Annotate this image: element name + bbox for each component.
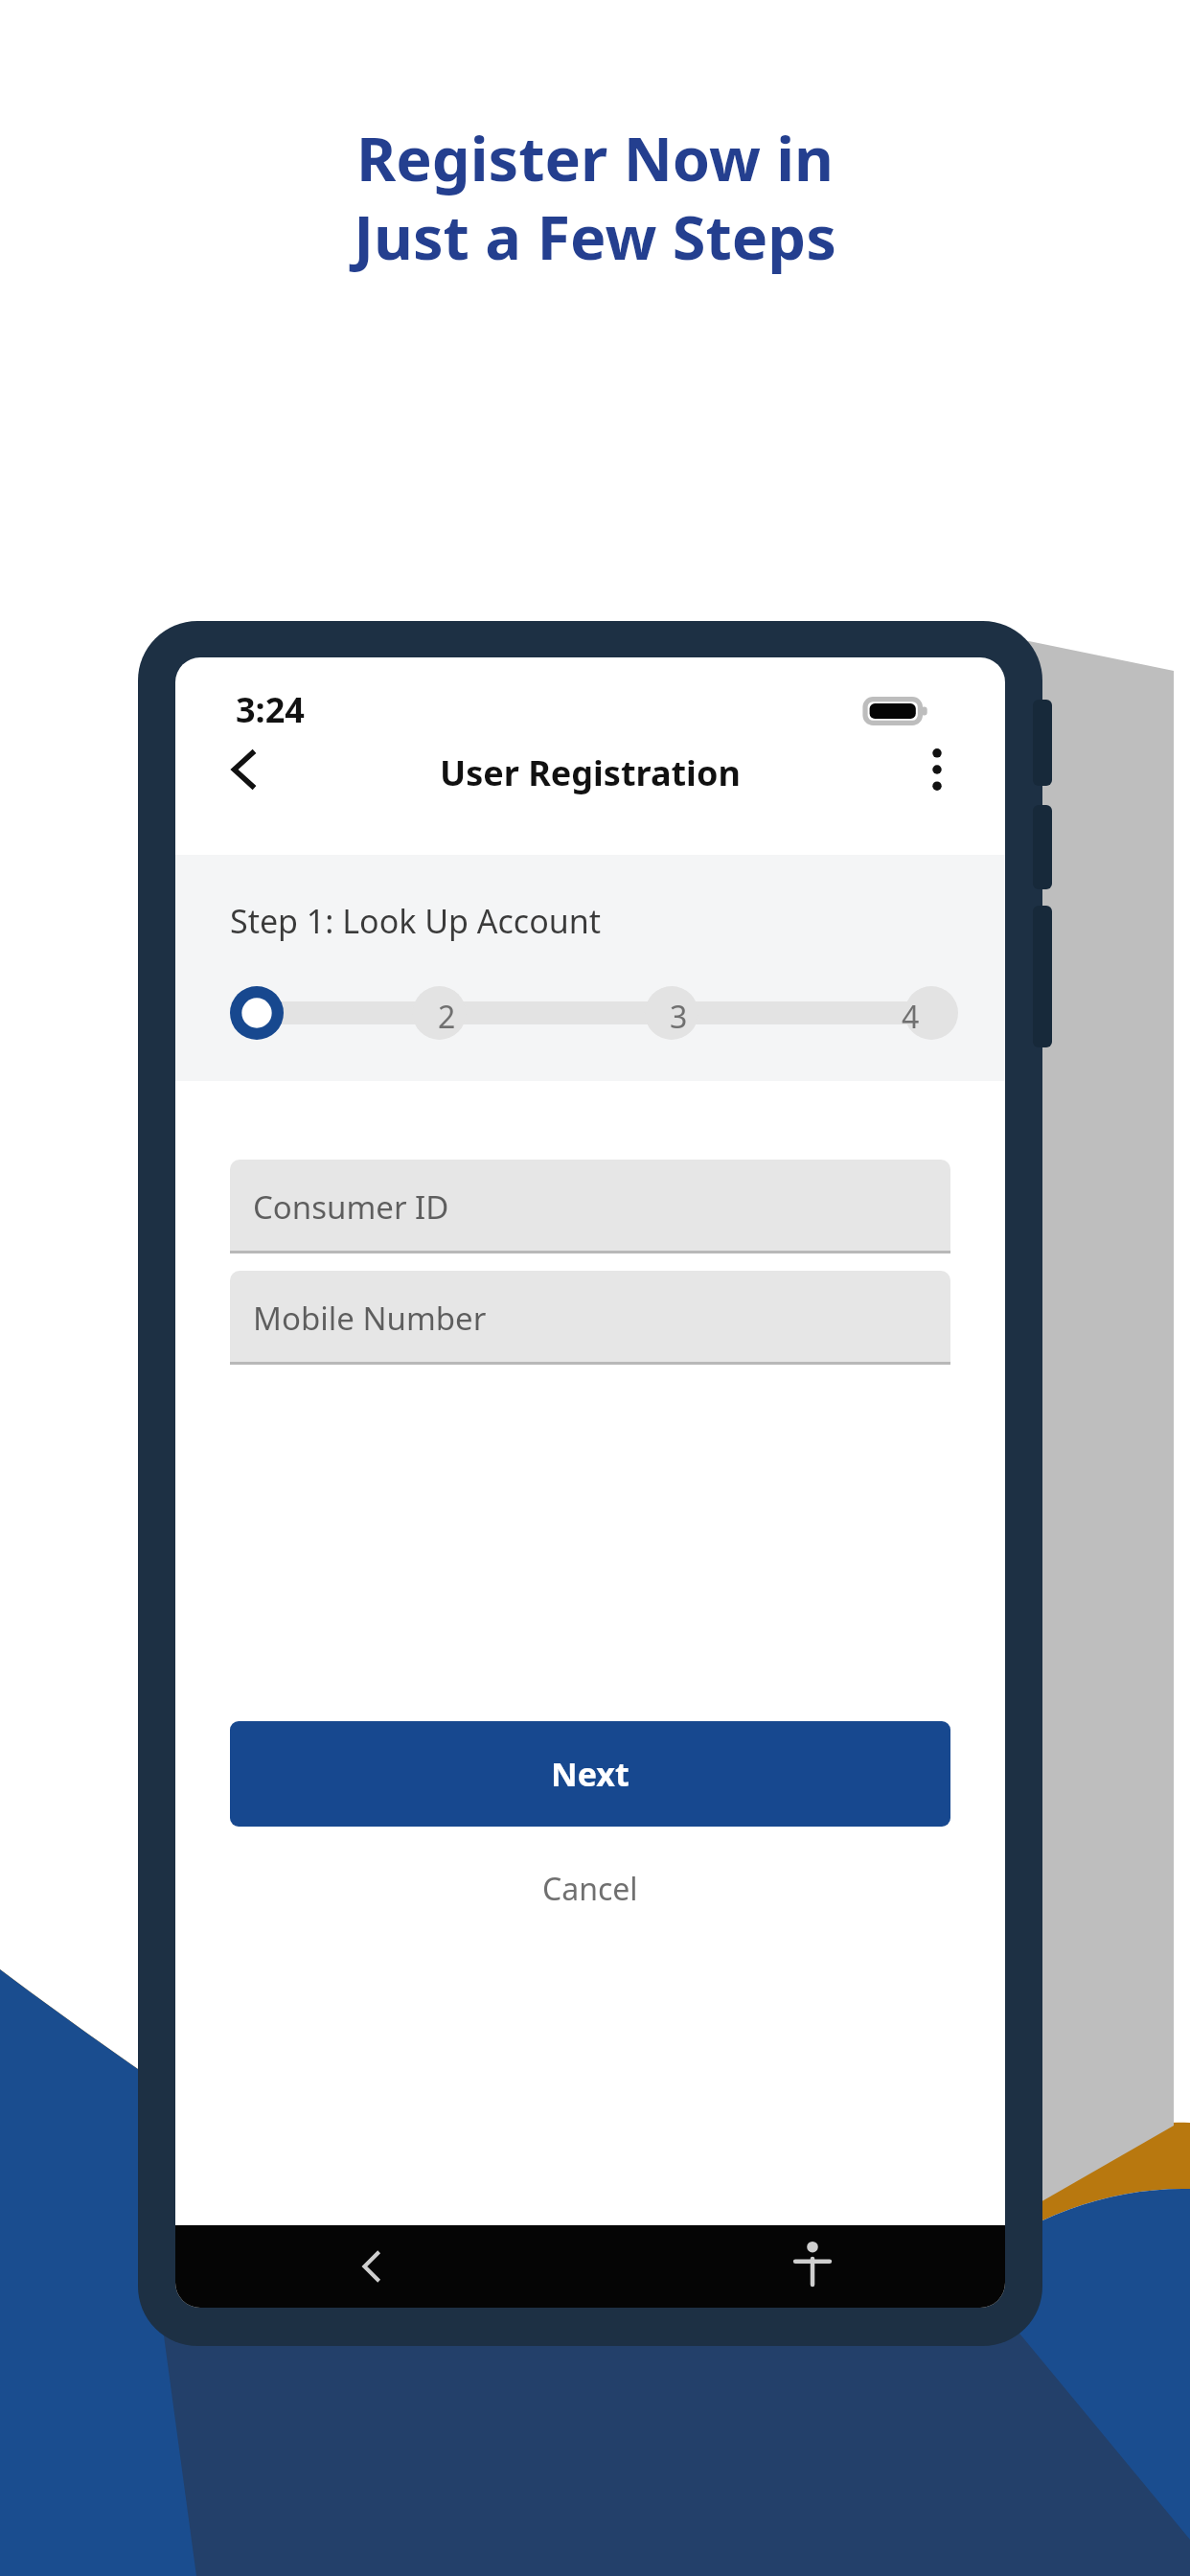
staticText: Next (551, 1752, 629, 1796)
staticText: User Registration (440, 749, 741, 796)
staticText: 3:24 (236, 686, 305, 733)
other: Battery full (865, 692, 932, 730)
staticText: Consumer ID (253, 1185, 449, 1229)
button[interactable]: Cancel (472, 1855, 708, 1922)
staticText: 2 (438, 996, 456, 1038)
button[interactable]: Back (329, 2225, 1005, 2308)
button[interactable]: Next (230, 1721, 950, 1827)
button[interactable]: More options (896, 728, 978, 811)
staticText: Cancel (542, 1868, 638, 1910)
button[interactable]: Accessibility (769, 2225, 856, 2308)
staticText: Register Now in Just a Few Steps (354, 117, 836, 278)
staticText: 3 (670, 996, 688, 1038)
button[interactable]: Back (202, 728, 285, 811)
button[interactable]: Consumer ID (230, 1160, 950, 1253)
staticText: 4 (902, 996, 920, 1038)
staticText: Step 1: Look Up Account (230, 899, 602, 943)
button[interactable]: Mobile Number (230, 1271, 950, 1365)
staticText: Mobile Number (253, 1297, 487, 1340)
